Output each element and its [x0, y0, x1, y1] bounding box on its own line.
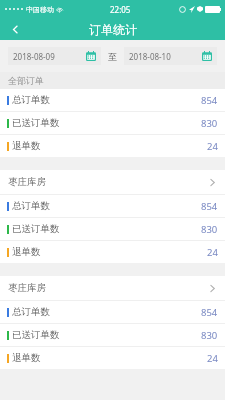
- staticText: 854: [201, 94, 218, 107]
- staticText: 订单统计: [89, 22, 137, 37]
- staticText: 总订单数: [12, 94, 50, 106]
- staticText: 854: [201, 200, 218, 213]
- staticText: 退单数: [12, 140, 41, 152]
- staticText: 854: [201, 306, 218, 319]
- staticText: 全部订单: [8, 75, 44, 86]
- button[interactable]: 枣庄库房: [0, 170, 225, 194]
- staticText: 24: [207, 246, 218, 259]
- button[interactable]: 退单数: [0, 241, 225, 263]
- staticText: 至: [108, 51, 117, 62]
- button[interactable]: 总订单数: [0, 195, 225, 217]
- staticText: 中国移动: [26, 5, 54, 14]
- button[interactable]: 已送订单数: [0, 112, 225, 134]
- button[interactable]: 退单数: [0, 347, 225, 369]
- staticText: 已送订单数: [12, 117, 60, 129]
- button[interactable]: Back: [0, 18, 30, 40]
- button[interactable]: 枣庄库房: [0, 276, 225, 300]
- staticText: 已送订单数: [12, 329, 60, 341]
- staticText: 退单数: [12, 352, 41, 364]
- staticText: 总订单数: [12, 306, 50, 318]
- staticText: 2018-08-10: [129, 51, 171, 62]
- button[interactable]: 退单数: [0, 135, 225, 157]
- button[interactable]: 2018-08-09: [8, 47, 101, 65]
- staticText: 枣庄库房: [8, 282, 46, 294]
- button[interactable]: 已送订单数: [0, 324, 225, 346]
- staticText: 830: [201, 223, 218, 236]
- staticText: 枣庄库房: [8, 176, 46, 188]
- staticText: 已送订单数: [12, 223, 60, 235]
- button[interactable]: 已送订单数: [0, 218, 225, 240]
- button[interactable]: 2018-08-10: [124, 47, 217, 65]
- staticText: 24: [207, 140, 218, 153]
- staticText: 退单数: [12, 246, 41, 258]
- button[interactable]: 总订单数: [0, 301, 225, 323]
- button[interactable]: 总订单数: [0, 89, 225, 111]
- staticText: 830: [201, 117, 218, 130]
- staticText: 24: [207, 352, 218, 365]
- staticText: 2018-08-09: [13, 51, 55, 62]
- staticText: 22:05: [110, 4, 131, 15]
- staticText: 830: [201, 329, 218, 342]
- staticText: 总订单数: [12, 200, 50, 212]
